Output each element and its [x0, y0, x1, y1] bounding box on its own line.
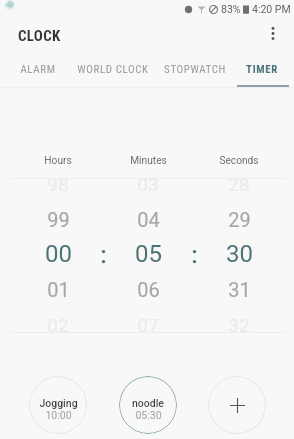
staticText: 03 — [137, 173, 159, 195]
staticText: 29 — [228, 208, 251, 231]
button[interactable]: TIMER — [232, 56, 292, 88]
staticText: noodle — [132, 397, 164, 409]
staticText: 31 — [228, 278, 251, 301]
staticText: 98 — [47, 173, 69, 195]
staticText: 30 — [226, 240, 253, 268]
staticText: Hours — [44, 155, 72, 167]
staticText: ALARM — [20, 63, 56, 76]
staticText: 99 — [47, 208, 70, 231]
staticText: 83% — [221, 3, 241, 15]
staticText: 02 — [47, 314, 69, 336]
staticText: 10:00 — [45, 409, 72, 421]
button[interactable]: ALARM — [7, 56, 69, 88]
staticText: Jogging — [39, 397, 78, 409]
staticText: 07 — [137, 314, 159, 336]
button[interactable]: WORLD CLOCK — [69, 56, 157, 88]
button[interactable]: noodle — [119, 376, 177, 434]
staticText: STOPWATCH — [164, 63, 226, 76]
staticText: 01 — [47, 278, 70, 301]
staticText: 00 — [45, 240, 72, 268]
button[interactable]: Jogging — [29, 376, 87, 434]
staticText: Minutes — [130, 155, 167, 167]
staticText: 28 — [228, 173, 250, 195]
button[interactable]: Add timer preset — [208, 376, 266, 434]
staticText: 06 — [137, 278, 160, 301]
staticText: 04 — [137, 208, 160, 231]
button[interactable]: More options — [258, 21, 288, 51]
staticText: TIMER — [246, 63, 278, 76]
staticText: CLOCK — [18, 27, 61, 45]
staticText: WORLD CLOCK — [77, 63, 149, 76]
staticText: 4:20 PM — [252, 3, 291, 15]
staticText: Seconds — [219, 155, 259, 167]
button[interactable]: STOPWATCH — [156, 56, 234, 88]
staticText: 05:30 — [135, 409, 162, 421]
staticText: 32 — [228, 314, 250, 336]
staticText: 05 — [135, 240, 162, 268]
